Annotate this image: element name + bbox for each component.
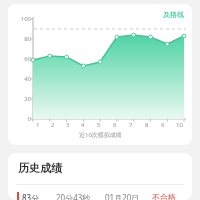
button[interactable]: 近10次模拟成绩折线图 <box>8 4 192 145</box>
staticText: 9 <box>161 121 165 129</box>
staticText: 8 <box>145 121 149 129</box>
staticText: 近10次模拟成绩 <box>79 131 122 139</box>
staticText: 1 <box>36 121 40 129</box>
staticText: 2 <box>51 121 55 129</box>
staticText: 历史成绩 <box>18 161 62 175</box>
staticText: 40 <box>8 75 31 83</box>
staticText: 60 <box>8 55 31 63</box>
staticText: 100 <box>8 15 31 23</box>
staticText: 20分43秒 <box>56 192 91 200</box>
staticText: 5 <box>97 121 101 129</box>
staticText: 7 <box>129 121 133 129</box>
staticText: 0 <box>8 115 31 123</box>
staticText: 4 <box>81 121 85 129</box>
staticText: 01月20日 <box>105 192 140 200</box>
staticText: 3 <box>66 121 70 129</box>
button[interactable]: 历史成绩 <box>8 153 192 200</box>
staticText: 6 <box>113 121 117 129</box>
staticText: 10 <box>176 121 183 129</box>
button[interactable]: 83分 <box>17 192 183 200</box>
staticText: 20 <box>8 95 31 103</box>
staticText: 83分 <box>22 192 40 200</box>
staticText: 及格线 <box>163 10 184 19</box>
staticText: 80 <box>8 35 31 43</box>
staticText: 不合格 <box>152 192 176 200</box>
other: 近10次模拟成绩折线图 <box>8 4 192 145</box>
